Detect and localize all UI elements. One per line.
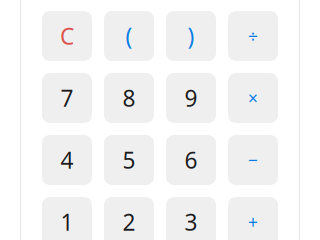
staticText: C	[60, 21, 74, 51]
button[interactable]: +	[228, 197, 278, 240]
staticText: 8	[122, 83, 135, 113]
staticText: (	[125, 21, 132, 51]
button[interactable]: 5	[104, 135, 154, 185]
button[interactable]: 8	[104, 73, 154, 123]
staticText: 7	[60, 83, 73, 113]
staticText: 4	[60, 145, 73, 175]
button[interactable]: 1	[42, 197, 92, 240]
button[interactable]: 9	[166, 73, 216, 123]
staticText: ÷	[248, 24, 258, 47]
button[interactable]: )	[166, 11, 216, 61]
button[interactable]: −	[228, 135, 278, 185]
staticText: 3	[184, 207, 197, 237]
button[interactable]: ×	[228, 73, 278, 123]
staticText: 5	[122, 145, 135, 175]
staticText: 6	[184, 145, 197, 175]
button[interactable]: ÷	[228, 11, 278, 61]
staticText: +	[248, 210, 258, 233]
staticText: 2	[122, 207, 135, 237]
staticText: −	[248, 148, 258, 171]
button[interactable]: 4	[42, 135, 92, 185]
button[interactable]: 3	[166, 197, 216, 240]
button[interactable]: 7	[42, 73, 92, 123]
staticText: 1	[60, 207, 73, 237]
button[interactable]: 2	[104, 197, 154, 240]
staticText: )	[187, 21, 194, 51]
button[interactable]: C	[42, 11, 92, 61]
staticText: 9	[184, 83, 197, 113]
staticText: ×	[248, 86, 258, 109]
button[interactable]: 6	[166, 135, 216, 185]
button[interactable]: (	[104, 11, 154, 61]
